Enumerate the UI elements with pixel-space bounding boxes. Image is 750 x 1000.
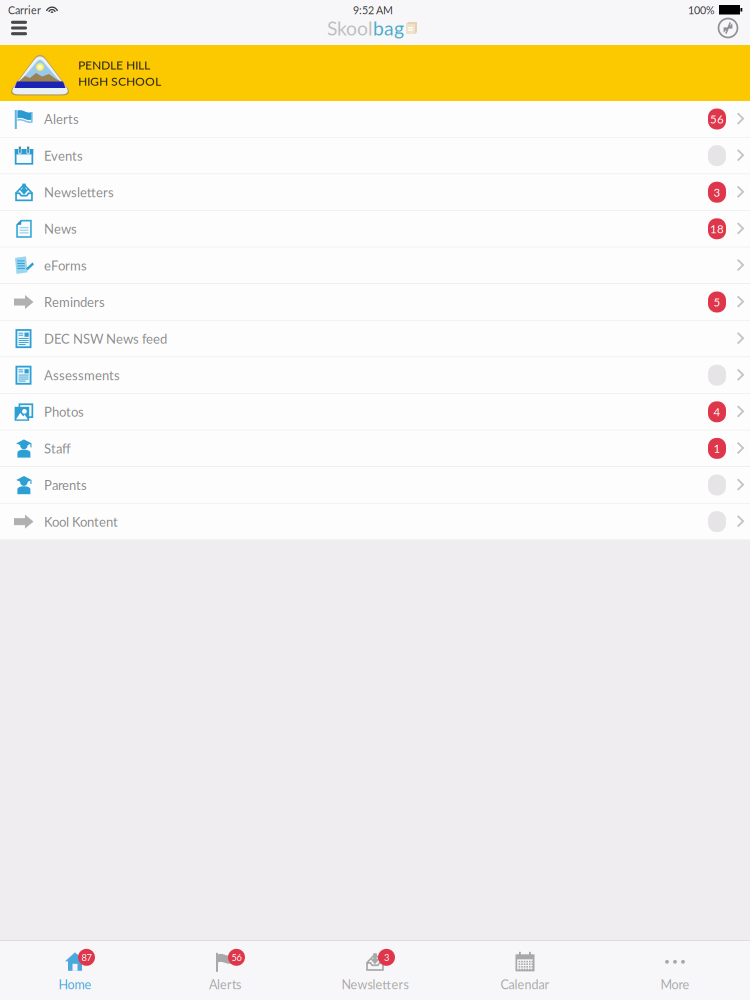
staticText: Photos — [44, 404, 84, 420]
staticText: Home — [58, 977, 91, 992]
button[interactable]: Parents — [0, 467, 750, 504]
staticText: Events — [44, 148, 83, 163]
staticText: Newsletters — [341, 977, 408, 992]
button[interactable]: Calendar — [500, 945, 549, 995]
staticText: Parents — [44, 477, 87, 493]
button[interactable]: 3 — [341, 945, 408, 995]
staticText: Alerts — [209, 977, 241, 992]
staticText: 87 — [81, 952, 91, 963]
button[interactable]: Assessments — [0, 357, 750, 394]
button[interactable]: Staff — [0, 430, 750, 467]
staticText: More — [660, 977, 689, 992]
staticText: 56 — [710, 112, 724, 126]
staticText: Calendar — [500, 977, 549, 992]
staticText: 56 — [231, 952, 241, 963]
staticText: Reminders — [44, 294, 105, 310]
button[interactable]: Newsletters — [0, 174, 750, 211]
staticText: 9:52 AM — [353, 4, 393, 16]
staticText: Skool — [327, 16, 373, 40]
staticText: Staff — [44, 441, 71, 456]
button[interactable]: 56 — [205, 945, 245, 995]
staticText: 4 — [713, 405, 720, 419]
staticText: Assessments — [44, 367, 120, 383]
button[interactable]: News — [0, 211, 750, 247]
staticText: 3 — [713, 185, 720, 199]
button[interactable]: eForms — [0, 247, 750, 284]
staticText: 3 — [384, 952, 389, 963]
button[interactable]: Menu — [1, 15, 37, 40]
staticText: 5 — [713, 295, 720, 309]
staticText: PENDLE HILL — [78, 58, 150, 72]
button[interactable]: More — [655, 945, 695, 995]
button[interactable]: Reminders — [0, 284, 750, 321]
staticText: 100% — [688, 4, 715, 16]
button[interactable]: Switch school — [708, 15, 748, 41]
staticText: bag — [373, 16, 404, 40]
button[interactable]: Events — [0, 138, 750, 174]
staticText: eForms — [44, 258, 87, 273]
staticText: News — [44, 221, 77, 237]
staticText: Alerts — [44, 111, 79, 127]
staticText: 1 — [713, 441, 720, 455]
button[interactable]: Alerts — [0, 101, 750, 138]
staticText: DEC NSW News feed — [44, 331, 167, 346]
button[interactable]: Photos — [0, 394, 750, 430]
button[interactable]: DEC NSW News feed — [0, 321, 750, 357]
staticText: Newsletters — [44, 184, 114, 200]
staticText: Kool Kontent — [44, 514, 118, 529]
staticText: HIGH SCHOOL — [78, 74, 161, 88]
button[interactable]: Kool Kontent — [0, 504, 750, 540]
staticText: Carrier — [8, 4, 41, 16]
button[interactable]: 87 — [55, 945, 95, 995]
staticText: 18 — [710, 222, 724, 236]
